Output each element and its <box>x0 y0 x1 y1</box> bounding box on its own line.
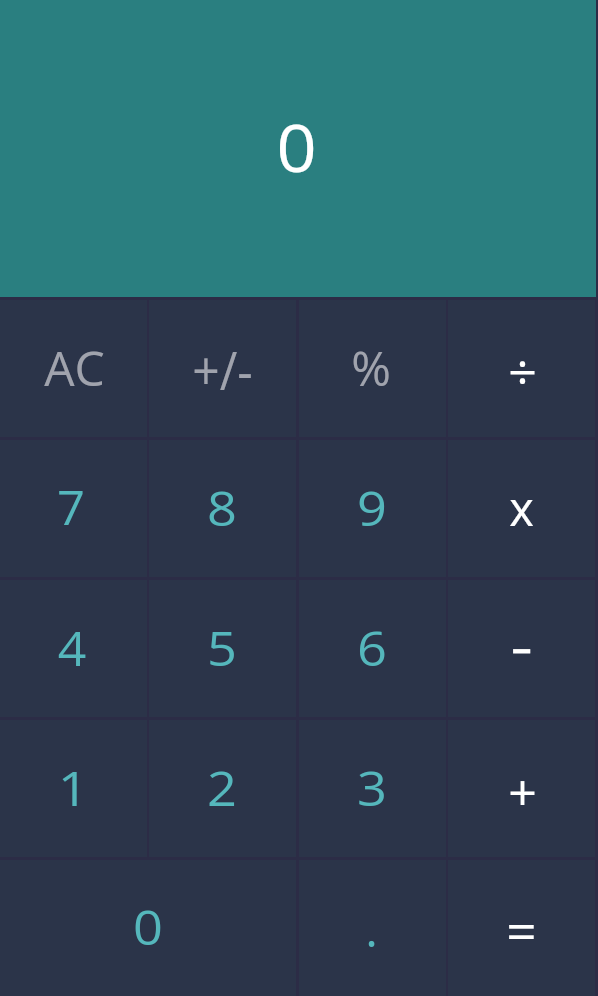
button[interactable]: Plus <box>448 720 595 857</box>
button[interactable]: 8 <box>149 440 296 577</box>
staticText: + <box>508 758 537 826</box>
staticText: 0 <box>133 894 163 959</box>
staticText: 8 <box>207 475 237 540</box>
button[interactable]: 9 <box>299 440 446 577</box>
button[interactable]: % <box>299 300 446 437</box>
staticText: ÷ <box>508 337 537 405</box>
button[interactable]: 5 <box>149 580 296 717</box>
button[interactable]: +/- <box>149 300 296 437</box>
staticText: 5 <box>207 615 237 680</box>
staticText: 1 <box>57 755 89 820</box>
button[interactable]: . <box>299 860 446 996</box>
button[interactable]: Result display <box>0 0 596 297</box>
staticText: x <box>509 476 534 540</box>
button[interactable]: 3 <box>299 720 446 857</box>
button[interactable]: Minus <box>448 580 595 717</box>
staticText: 0 <box>276 103 317 192</box>
staticText: 2 <box>207 755 237 820</box>
button[interactable]: Multiply <box>448 440 595 577</box>
button[interactable]: 7 <box>0 440 147 577</box>
button[interactable]: Divide <box>448 300 595 437</box>
staticText: 4 <box>57 615 86 680</box>
button[interactable]: 6 <box>299 580 446 717</box>
button[interactable]: 1 <box>0 720 147 857</box>
staticText: 7 <box>57 474 85 539</box>
staticText: = <box>506 894 537 966</box>
staticText: . <box>365 896 378 961</box>
button[interactable]: Equals <box>448 860 595 996</box>
staticText: AC <box>44 335 105 400</box>
button[interactable]: AC <box>0 300 147 437</box>
staticText: − <box>511 609 532 692</box>
button[interactable]: 0 <box>0 860 296 996</box>
staticText: % <box>351 335 391 400</box>
staticText: 6 <box>357 615 387 680</box>
button[interactable]: 4 <box>0 580 147 717</box>
staticText: +/- <box>192 334 253 405</box>
staticText: 3 <box>357 755 387 820</box>
button[interactable]: 2 <box>149 720 296 857</box>
staticText: 9 <box>357 475 387 540</box>
